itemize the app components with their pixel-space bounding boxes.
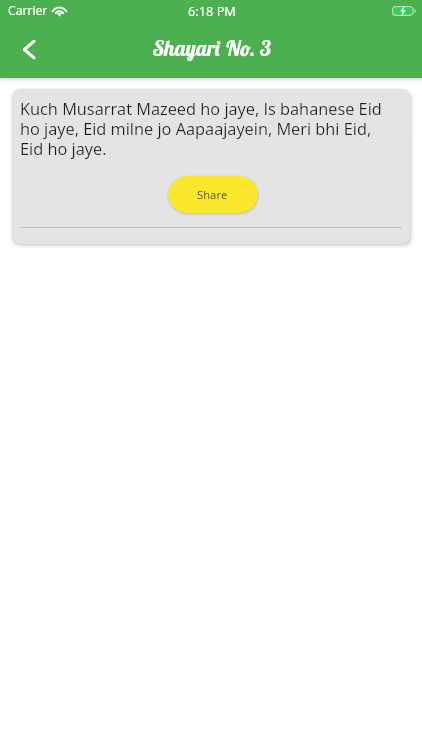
button[interactable]: Back [7, 27, 51, 71]
staticText: Share [197, 187, 228, 202]
staticText: Shayari No. 3 [153, 35, 272, 61]
staticText: 6:18 PM [188, 2, 236, 19]
button[interactable]: Share [168, 176, 258, 213]
staticText: Kuch Musarrat Mazeed ho jaye, Is bahanes… [20, 98, 396, 160]
staticText: Carrier [8, 2, 48, 19]
